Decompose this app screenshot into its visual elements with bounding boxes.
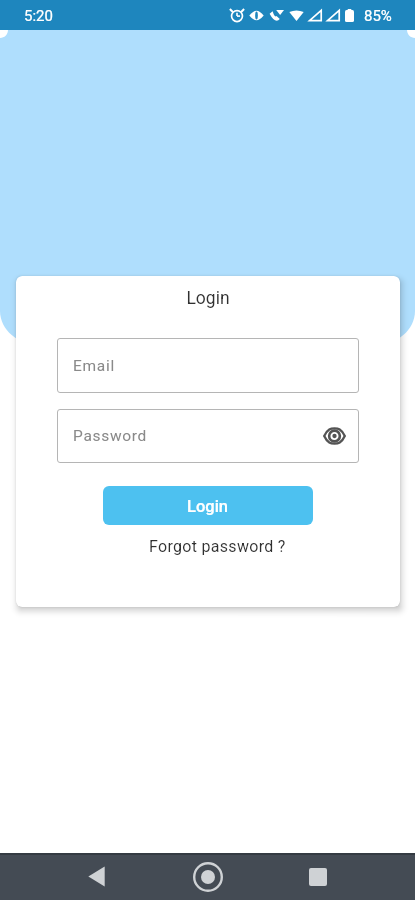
button[interactable]: Back (72, 853, 120, 900)
button[interactable]: Email (57, 338, 359, 393)
staticText: Login (187, 497, 229, 516)
button[interactable]: Login (103, 486, 313, 525)
button[interactable]: Recents (294, 853, 342, 900)
staticText: Email (73, 357, 115, 375)
button[interactable]: Password (57, 409, 359, 463)
button[interactable]: Forgot password ? (145, 534, 290, 559)
staticText: 85% (364, 7, 392, 25)
button[interactable]: Show password (320, 422, 348, 450)
staticText: Login (16, 288, 400, 309)
button[interactable]: Home (184, 853, 232, 900)
staticText: 5:20 (24, 7, 53, 25)
staticText: Password (73, 427, 148, 445)
